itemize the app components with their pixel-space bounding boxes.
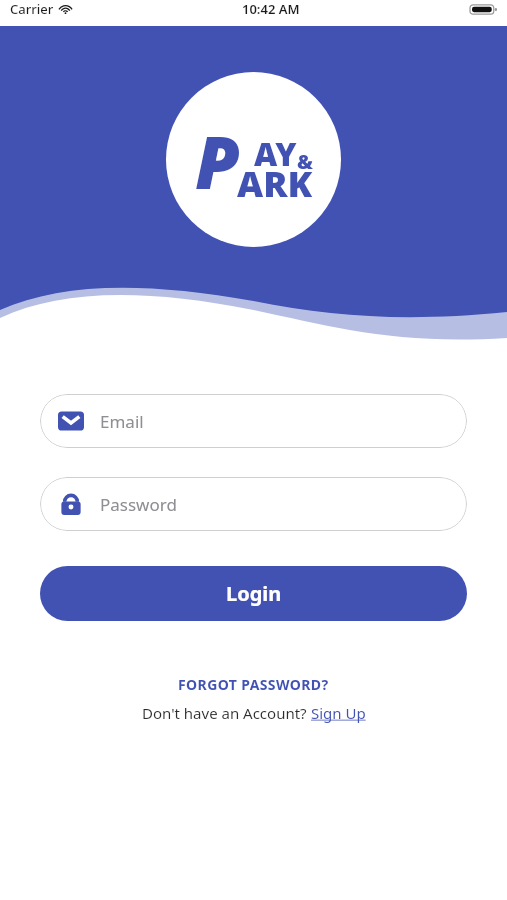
staticText: P (195, 112, 240, 210)
staticText: Carrier (10, 0, 54, 18)
button[interactable]: Sign Up (311, 703, 366, 723)
staticText: ARK (237, 159, 313, 208)
staticText: Sign Up (311, 703, 366, 723)
button[interactable]: Login (40, 566, 467, 621)
staticText: 10:42 AM (242, 0, 300, 18)
button[interactable]: FORGOT PASSWORD? (178, 675, 329, 694)
staticText: Don't have an Account? (142, 703, 311, 723)
staticText: & (297, 148, 313, 175)
other: Email (58, 408, 84, 434)
button[interactable]: Email (40, 394, 467, 448)
staticText: FORGOT PASSWORD? (178, 675, 329, 694)
other: Password (58, 491, 84, 517)
staticText: Email (100, 410, 144, 433)
staticText: Login (226, 580, 282, 607)
button[interactable]: Password (40, 477, 467, 531)
staticText: AY (254, 132, 297, 176)
staticText: Password (100, 493, 177, 516)
